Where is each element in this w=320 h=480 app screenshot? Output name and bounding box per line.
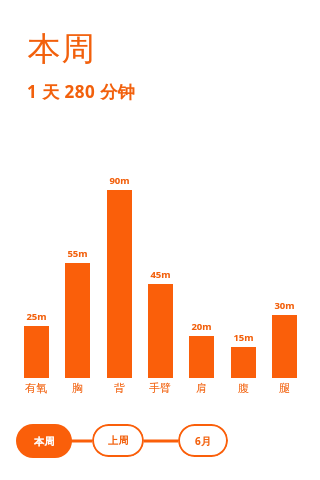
staticText: 有氧 (25, 381, 47, 395)
staticText: 腹 (238, 381, 249, 395)
staticText: 胸 (72, 381, 83, 395)
staticText: 6月 (195, 434, 212, 448)
staticText: 15m (233, 331, 254, 344)
button[interactable]: 本周 (16, 424, 72, 458)
button[interactable]: 上周 (92, 424, 144, 457)
staticText: 45m (150, 268, 171, 281)
staticText: 手臂 (149, 381, 171, 395)
staticText: 上周 (108, 434, 129, 447)
staticText: 25m (26, 310, 47, 323)
staticText: 背 (114, 381, 125, 395)
staticText: 20m (191, 320, 212, 333)
button[interactable]: 6月 (178, 424, 228, 457)
staticText: 肩 (196, 381, 207, 395)
staticText: 本周 (27, 28, 95, 70)
staticText: 腿 (279, 381, 290, 395)
staticText: 1 天 280 分钟 (27, 80, 136, 103)
staticText: 90m (109, 174, 130, 187)
staticText: 本周 (34, 435, 55, 448)
staticText: 55m (67, 247, 88, 260)
staticText: 30m (274, 299, 295, 312)
